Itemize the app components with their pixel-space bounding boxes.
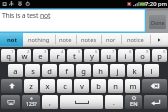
- staticText: 8: [129, 49, 132, 55]
- staticText: notice: [127, 36, 144, 44]
- button[interactable]: Language: [125, 95, 142, 109]
- staticText: c: [63, 81, 67, 91]
- button[interactable]: z: [24, 79, 38, 93]
- staticText: not: [7, 36, 17, 44]
- staticText: Done: [151, 19, 165, 26]
- button[interactable]: Done: [149, 15, 166, 29]
- staticText: p: [157, 51, 162, 61]
- button[interactable]: g: [76, 64, 91, 77]
- button[interactable]: k: [127, 64, 142, 77]
- staticText: 4: [61, 49, 64, 55]
- staticText: w: [21, 51, 28, 61]
- button[interactable]: f: [59, 64, 74, 77]
- staticText: 9: [146, 49, 149, 55]
- button[interactable]: c: [57, 79, 72, 93]
- staticText: EN: [130, 100, 138, 108]
- staticText: b: [96, 81, 101, 91]
- staticText: q: [6, 51, 11, 61]
- button[interactable]: u: [101, 49, 116, 62]
- staticText: o: [140, 51, 145, 61]
- button[interactable]: a: [8, 64, 23, 77]
- button[interactable]: More suggestions: [150, 33, 168, 47]
- button[interactable]: notice: [121, 33, 150, 47]
- staticText: 1: [11, 49, 14, 55]
- staticText: notes: [81, 36, 97, 44]
- button[interactable]: h: [93, 64, 108, 77]
- button[interactable]: q: [1, 49, 15, 62]
- staticText: 7: [112, 49, 115, 55]
- staticText: .: [113, 98, 115, 107]
- staticText: u: [106, 51, 111, 61]
- staticText: m: [129, 81, 137, 91]
- button[interactable]: notes: [76, 33, 101, 47]
- staticText: 2: [27, 49, 30, 55]
- staticText: note: [59, 36, 72, 44]
- staticText: r: [56, 51, 60, 61]
- button[interactable]: x: [40, 79, 55, 93]
- staticText: This is a test: [2, 11, 40, 20]
- button[interactable]: not: [0, 33, 23, 47]
- staticText: 123?: [26, 100, 37, 107]
- button[interactable]: j: [110, 64, 125, 77]
- button[interactable]: i: [118, 49, 133, 62]
- button[interactable]: nor: [101, 33, 121, 47]
- staticText: s: [31, 66, 35, 76]
- button[interactable]: d: [42, 64, 57, 77]
- staticText: v: [80, 81, 84, 91]
- button[interactable]: note: [55, 33, 76, 47]
- button[interactable]: Backspace: [142, 79, 167, 93]
- staticText: e: [38, 51, 43, 61]
- button[interactable]: v: [74, 79, 89, 93]
- staticText: l: [150, 66, 153, 76]
- staticText: nor: [106, 36, 116, 44]
- staticText: n: [113, 81, 118, 91]
- staticText: j: [116, 66, 119, 76]
- staticText: 3: [44, 49, 47, 55]
- button[interactable]: r: [50, 49, 65, 62]
- button[interactable]: e: [33, 49, 48, 62]
- button[interactable]: Space: [60, 95, 103, 109]
- staticText: 0: [163, 49, 166, 55]
- staticText: t: [73, 51, 76, 61]
- button[interactable]: ,: [42, 95, 58, 109]
- button[interactable]: l: [144, 64, 159, 77]
- button[interactable]: .: [105, 95, 123, 109]
- button[interactable]: Enter: [144, 95, 167, 109]
- button[interactable]: m: [125, 79, 140, 93]
- button[interactable]: nothing: [23, 33, 55, 47]
- staticText: g: [81, 66, 86, 76]
- staticText: y: [90, 51, 94, 61]
- staticText: d: [47, 66, 52, 76]
- button[interactable]: t: [67, 49, 82, 62]
- button[interactable]: y: [84, 49, 99, 62]
- button[interactable]: Shift: [1, 79, 22, 93]
- staticText: nothing: [28, 36, 50, 44]
- button[interactable]: s: [25, 64, 40, 77]
- button[interactable]: Symbols: [22, 95, 40, 109]
- staticText: 5: [78, 49, 81, 55]
- staticText: x: [45, 81, 50, 91]
- staticText: 7:20 pm: [145, 0, 167, 8]
- staticText: k: [132, 66, 137, 76]
- staticText: z: [29, 81, 33, 91]
- button[interactable]: n: [108, 79, 123, 93]
- staticText: h: [98, 66, 103, 76]
- staticText: f: [65, 66, 68, 76]
- staticText: i: [124, 51, 127, 61]
- button[interactable]: w: [17, 49, 31, 62]
- button[interactable]: p: [152, 49, 167, 62]
- button[interactable]: b: [91, 79, 106, 93]
- staticText: ,: [49, 98, 51, 107]
- button[interactable]: Keyboard settings: [1, 95, 20, 109]
- button[interactable]: o: [135, 49, 150, 62]
- staticText: not: [40, 11, 51, 20]
- staticText: a: [13, 66, 18, 76]
- staticText: 6: [95, 49, 98, 55]
